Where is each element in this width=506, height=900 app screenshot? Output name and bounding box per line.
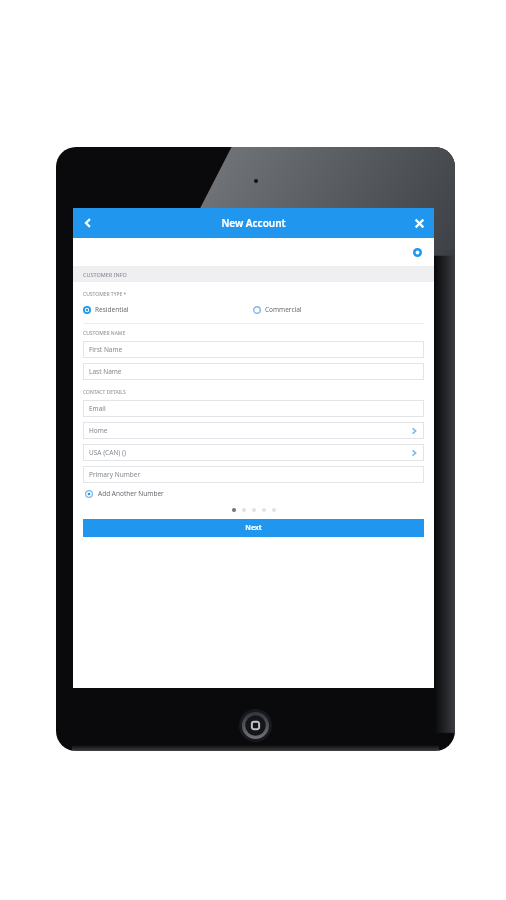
button[interactable] bbox=[232, 508, 236, 512]
staticText: Commercial bbox=[265, 305, 302, 314]
staticText: Email bbox=[89, 404, 106, 413]
button[interactable]: Back bbox=[73, 208, 103, 238]
staticText: CONTACT DETAILS bbox=[83, 389, 126, 396]
button[interactable]: Email bbox=[83, 400, 424, 417]
staticText: USA (CAN) () bbox=[89, 448, 126, 457]
button[interactable] bbox=[272, 508, 276, 512]
staticText: Home bbox=[89, 426, 108, 435]
staticText: Residential bbox=[95, 305, 129, 314]
button[interactable]: Next bbox=[83, 519, 424, 537]
button[interactable]: First Name bbox=[83, 341, 424, 358]
button[interactable]: Home bbox=[239, 709, 272, 742]
button[interactable]: Add Another Number bbox=[83, 487, 164, 500]
button[interactable]: Home bbox=[83, 422, 424, 439]
button[interactable] bbox=[242, 508, 246, 512]
staticText: Last Name bbox=[89, 367, 122, 376]
button[interactable]: Information bbox=[408, 243, 426, 261]
button[interactable]: Last Name bbox=[83, 363, 424, 380]
staticText: CUSTOMER TYPE * bbox=[83, 291, 127, 298]
staticText: CUSTOMER NAME bbox=[83, 330, 126, 337]
button[interactable]: Primary Number bbox=[83, 466, 424, 483]
staticText: New Account bbox=[221, 216, 286, 230]
staticText: CUSTOMER INFO bbox=[83, 271, 127, 278]
staticText: Primary Number bbox=[89, 470, 141, 479]
button[interactable] bbox=[252, 508, 256, 512]
staticText: Next bbox=[245, 523, 262, 533]
button[interactable] bbox=[262, 508, 266, 512]
button[interactable]: Residential bbox=[83, 303, 253, 316]
button[interactable]: Close bbox=[404, 208, 434, 238]
staticText: First Name bbox=[89, 345, 123, 354]
staticText: Add Another Number bbox=[98, 489, 164, 498]
button[interactable]: Commercial bbox=[253, 303, 424, 316]
button[interactable]: USA (CAN) () bbox=[83, 444, 424, 461]
